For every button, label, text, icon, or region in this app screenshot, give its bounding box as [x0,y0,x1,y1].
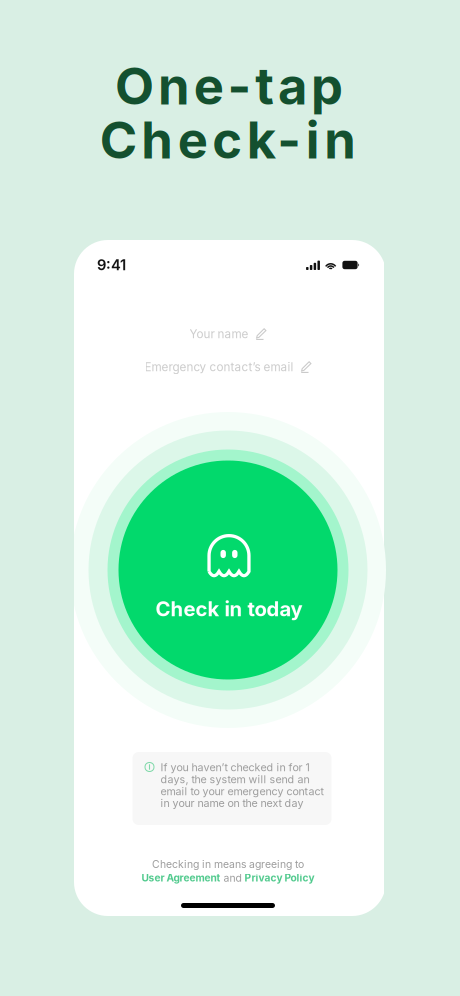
staticText: Emergency contact’s email [144,360,293,374]
staticText: Privacy Policy [244,872,314,884]
staticText: If you haven’t checked in for 1 days, th… [160,761,323,810]
staticText: Check-in [100,109,356,171]
staticText: One-tap [115,55,343,117]
button[interactable]: User Agreement [141,872,220,884]
staticText: Checking in means agreeing to [152,858,304,871]
button[interactable]: Check in today [70,412,386,728]
staticText: User Agreement [141,872,220,884]
button[interactable]: Emergency contact’s email [72,357,384,377]
staticText: and [223,872,241,884]
staticText: Check in today [155,597,302,621]
staticText: Your name [189,327,248,341]
button[interactable]: Your name [72,324,384,344]
button[interactable]: Privacy Policy [244,872,314,884]
staticText: 9:41 [97,256,126,274]
